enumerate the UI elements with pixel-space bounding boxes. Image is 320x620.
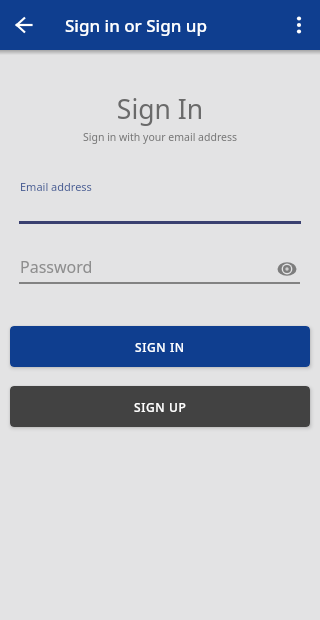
button[interactable]: Password — [0, 250, 320, 290]
button[interactable]: SIGN UP — [10, 386, 310, 427]
staticText: SIGN UP — [134, 399, 187, 415]
staticText: SIGN IN — [135, 339, 185, 355]
staticText: Sign in with your email address — [0, 130, 320, 144]
staticText: Email address — [20, 179, 92, 194]
button[interactable] — [285, 11, 313, 39]
staticText: Password — [20, 256, 93, 278]
button[interactable]: SIGN IN — [10, 326, 310, 367]
button[interactable] — [275, 257, 299, 281]
staticText: Sign In — [0, 91, 320, 127]
staticText: Sign in or Sign up — [65, 14, 207, 37]
button[interactable]: Email address — [0, 175, 320, 225]
button[interactable] — [8, 9, 40, 41]
